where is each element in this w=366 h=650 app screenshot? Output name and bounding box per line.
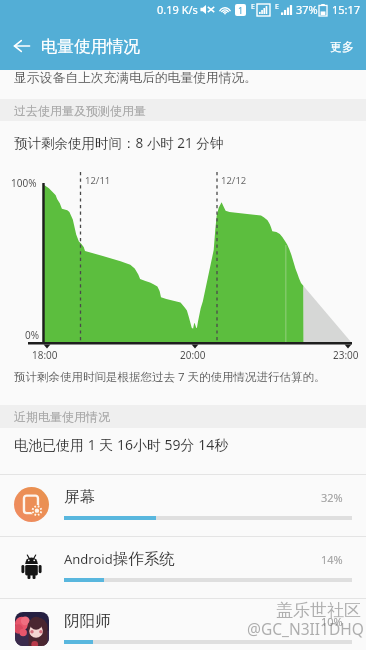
staticText: 0.19 K/s [157,2,198,17]
staticText: 15:17 [332,2,361,17]
staticText: 20:00 [180,348,206,362]
staticText: 过去使用量及预测使用量 [14,103,146,118]
staticText: 预计剩余使用时间是根据您过去 7 天的使用情况进行估算的。 [14,369,326,385]
button[interactable]: Back [0,24,44,68]
staticText: 10% [321,614,343,629]
staticText: 18:00 [32,348,58,362]
staticText: E [275,2,279,12]
staticText: 屏幕 [64,487,95,507]
staticText: 12/12 [221,174,247,187]
staticText: 阴阳师 [64,611,111,631]
staticText: 预计剩余使用时间：8 小时 21 分钟 [14,134,224,152]
button[interactable]: 屏幕 [0,474,366,536]
staticText: 更多 [330,39,354,54]
staticText: 电池已使用 1 天 16小时 59分 14秒 [14,435,229,454]
staticText: @GC_N3II1DHQ [247,618,364,639]
button[interactable]: 阴阳师 [0,598,366,650]
staticText: 近期电量使用情况 [14,409,110,424]
staticText: 14% [321,552,343,567]
staticText: 37% [296,2,318,17]
staticText: 100% [11,176,37,190]
staticText: 显示设备自上次充满电后的电量使用情况。 [14,70,258,86]
staticText: 12/11 [85,174,111,187]
staticText: 电量使用情况 [41,36,140,57]
staticText: 盖乐世社区 [276,600,361,621]
staticText: E [251,2,255,12]
staticText: 23:00 [333,348,359,362]
staticText: 32% [321,490,343,505]
staticText: 0% [25,328,40,342]
button[interactable]: 更多 [318,27,366,66]
button[interactable]: Android操作系统 [0,536,366,598]
staticText: Android操作系统 [64,549,175,569]
staticText: 1 [238,4,244,16]
